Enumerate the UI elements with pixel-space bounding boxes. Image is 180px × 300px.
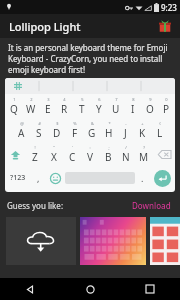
button[interactable]: /: [117, 142, 135, 166]
staticText: 4: [63, 97, 66, 102]
button[interactable]: Backspace: [153, 142, 175, 166]
staticText: P: [163, 102, 170, 116]
button[interactable]: Shift: [5, 142, 25, 166]
button[interactable]: 7: [107, 94, 124, 118]
button[interactable]: ?123: [5, 166, 31, 190]
button[interactable]: 0: [158, 94, 175, 118]
button[interactable]: 5: [73, 94, 90, 118]
button[interactable]: (: [151, 118, 168, 142]
staticText: D: [53, 126, 61, 140]
staticText: C: [69, 150, 76, 164]
staticText: ?: [143, 145, 145, 150]
button[interactable]: :: [81, 142, 99, 166]
button[interactable]: 1: [5, 94, 22, 118]
staticText: X: [51, 150, 57, 164]
staticText: 6: [98, 97, 101, 102]
staticText: Y: [96, 102, 102, 116]
staticText: Lollipop Light: [9, 19, 81, 34]
staticText: E: [45, 102, 51, 116]
staticText: O: [146, 102, 154, 116]
staticText: G: [88, 126, 96, 140]
button[interactable]: ;: [99, 142, 117, 166]
staticText: J: [124, 126, 127, 140]
staticText: R: [61, 102, 68, 116]
staticText: 7: [115, 97, 118, 102]
staticText: S: [36, 126, 42, 140]
button[interactable]: Red theme: [150, 217, 180, 265]
button[interactable]: !: [25, 142, 44, 166]
staticText: H: [105, 126, 113, 140]
staticText: 0: [165, 97, 168, 102]
staticText: +: [141, 121, 144, 126]
staticText: V: [87, 150, 93, 164]
button[interactable]: Gift: [157, 18, 173, 34]
staticText: $: [56, 121, 59, 126]
staticText: 8: [132, 97, 135, 102]
button[interactable]: Home: [60, 278, 120, 300]
button[interactable]: ": [44, 142, 63, 166]
button[interactable]: 2: [22, 94, 39, 118]
staticText: Z: [32, 150, 38, 164]
button[interactable]: #: [30, 118, 48, 142]
button[interactable]: .: [135, 166, 149, 190]
staticText: N: [122, 150, 130, 164]
button[interactable]: Gradient theme: [80, 217, 146, 265]
button[interactable]: Theme grid: [12, 80, 24, 92]
staticText: @: [20, 121, 24, 126]
staticText: 5: [81, 97, 84, 102]
button[interactable]: ,: [31, 166, 45, 190]
staticText: 3: [47, 97, 50, 102]
button[interactable]: Emoji: [45, 166, 65, 190]
staticText: B: [105, 150, 112, 164]
button[interactable]: Back: [0, 278, 60, 300]
staticText: U: [112, 102, 120, 116]
staticText: I: [131, 102, 135, 116]
button[interactable]: &: [83, 118, 100, 142]
staticText: Q: [10, 102, 18, 116]
staticText: -: [125, 121, 127, 126]
staticText: ?123: [10, 173, 26, 183]
staticText: ': [72, 145, 73, 150]
staticText: 9: [149, 97, 152, 102]
staticText: Guess you like:: [7, 200, 64, 211]
button[interactable]: 4: [56, 94, 73, 118]
button[interactable]: 3: [39, 94, 56, 118]
staticText: &: [91, 121, 94, 126]
button[interactable]: %: [66, 118, 83, 142]
staticText: A: [18, 126, 25, 140]
staticText: 1: [13, 97, 16, 102]
staticText: Download: [132, 200, 171, 211]
staticText: W: [26, 102, 36, 116]
button[interactable]: Enter: [149, 166, 175, 190]
button[interactable]: ': [63, 142, 81, 166]
staticText: ,: [37, 172, 40, 184]
staticText: /: [125, 145, 127, 150]
staticText: It is an personal keyboard theme for Emo…: [8, 42, 172, 75]
staticText: K: [139, 126, 146, 140]
button[interactable]: $: [48, 118, 66, 142]
button[interactable]: -: [117, 118, 134, 142]
button[interactable]: Download theme: [6, 217, 76, 265]
staticText: *: [108, 121, 111, 126]
staticText: L: [157, 126, 163, 140]
button[interactable]: Recents: [120, 278, 180, 300]
staticText: 2: [30, 97, 33, 102]
staticText: :: [89, 145, 91, 150]
staticText: 9:23: [161, 2, 177, 13]
button[interactable]: 9: [141, 94, 158, 118]
button[interactable]: *: [100, 118, 117, 142]
staticText: F: [72, 126, 78, 140]
staticText: ": [53, 145, 55, 150]
button[interactable]: Download: [130, 198, 173, 213]
staticText: M: [139, 150, 149, 164]
staticText: !: [34, 145, 36, 150]
button[interactable]: 6: [90, 94, 107, 118]
staticText: #: [38, 121, 41, 126]
button[interactable]: ?: [135, 142, 153, 166]
staticText: ;: [108, 145, 110, 150]
button[interactable]: 8: [124, 94, 141, 118]
button[interactable]: +: [134, 118, 151, 142]
staticText: T: [79, 102, 85, 116]
button[interactable]: @: [12, 118, 30, 142]
